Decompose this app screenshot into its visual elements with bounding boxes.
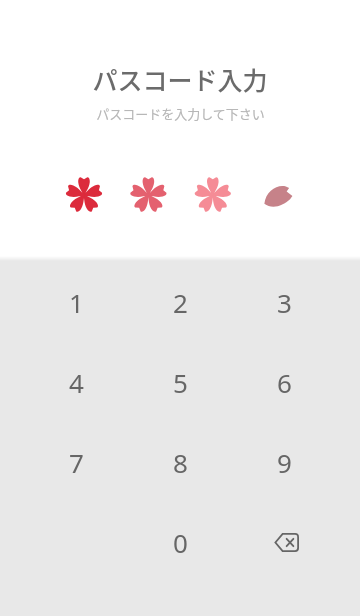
staticText: 2 xyxy=(173,285,188,320)
staticText: パスコードを入力して下さい xyxy=(96,104,265,123)
button[interactable]: 2 xyxy=(144,264,216,340)
staticText: 1 xyxy=(69,285,84,320)
button[interactable]: 7 xyxy=(40,424,112,500)
button[interactable]: 6 xyxy=(248,344,320,420)
staticText: 8 xyxy=(173,445,188,480)
staticText: 7 xyxy=(69,445,84,480)
button[interactable]: 3 xyxy=(248,264,320,340)
staticText: 4 xyxy=(69,365,84,400)
staticText: パスコード入力 xyxy=(92,61,268,97)
button[interactable]: 5 xyxy=(144,344,216,420)
staticText: 6 xyxy=(277,365,292,400)
staticText: 0 xyxy=(173,525,188,560)
staticText: 9 xyxy=(277,445,292,480)
button[interactable]: 0 xyxy=(144,504,216,580)
button[interactable]: 9 xyxy=(248,424,320,500)
button[interactable]: 4 xyxy=(40,344,112,420)
staticText: 3 xyxy=(277,285,292,320)
button[interactable]: 8 xyxy=(144,424,216,500)
button[interactable]: 1 xyxy=(40,264,112,340)
button[interactable]: Backspace xyxy=(248,504,320,580)
staticText: 5 xyxy=(173,365,188,400)
